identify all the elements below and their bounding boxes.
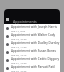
staticText: Appointment with Joseph Harris	[11, 25, 57, 29]
other: Appointment	[6, 27, 9, 30]
button[interactable]: Appointment	[4, 32, 60, 40]
staticText: Sep 19, 11:00	[11, 45, 27, 48]
staticText: Appointment with Dudley Dursley	[11, 41, 60, 45]
staticText: Appointment with Susan Bones	[11, 49, 56, 53]
staticText: Appointments	[13, 19, 37, 24]
staticText: Sep 17, 9:00	[11, 29, 26, 32]
staticText: Appointment with Parvati Patil	[11, 65, 55, 69]
other: Appointment	[6, 51, 9, 54]
other: Appointment	[6, 59, 9, 62]
button[interactable]: Appointment	[4, 40, 60, 48]
other: Appointment	[6, 35, 9, 38]
button[interactable]: Appointment	[4, 24, 60, 32]
staticText: Appointment with Walter Cody	[11, 33, 56, 37]
button[interactable]: Appointment	[4, 48, 60, 56]
button[interactable]: Appointment	[4, 64, 60, 72]
staticText: Sep 21, 14:00	[11, 61, 27, 64]
staticText: Sep 20, 13:15	[11, 53, 27, 56]
staticText: Sep 18, 10:30	[11, 37, 27, 40]
other: Appointment	[6, 43, 9, 46]
staticText: Appointment with Cedric Diggory	[11, 57, 60, 61]
other: Appointment	[6, 67, 9, 70]
button[interactable]: Appointment	[4, 56, 60, 64]
staticText: Sep 22, 15:45	[11, 69, 27, 72]
